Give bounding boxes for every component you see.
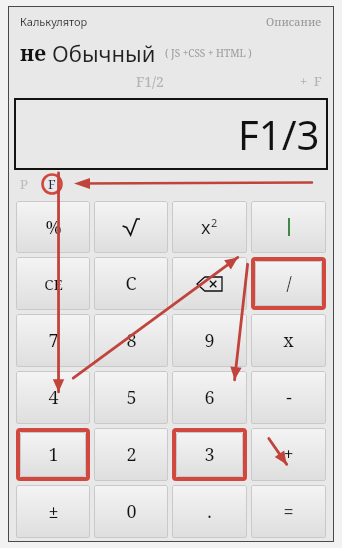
staticText: 6 bbox=[204, 385, 215, 410]
button[interactable]: 2 bbox=[94, 428, 168, 481]
staticText: . bbox=[207, 499, 212, 524]
staticText: 1 bbox=[48, 442, 59, 467]
button[interactable]: Описание bbox=[266, 14, 322, 29]
staticText: 7 bbox=[48, 328, 59, 353]
other: Backspace bbox=[172, 257, 247, 310]
staticText: x bbox=[201, 215, 211, 240]
staticText: 4 bbox=[48, 385, 59, 410]
staticText: 0 bbox=[126, 499, 137, 524]
button[interactable]: ± bbox=[16, 485, 90, 538]
button[interactable]: 0 bbox=[94, 485, 168, 538]
button[interactable]: 3 bbox=[176, 432, 243, 477]
staticText: C bbox=[125, 271, 137, 296]
button[interactable]: P bbox=[20, 175, 28, 193]
button[interactable]: + bbox=[251, 428, 326, 481]
staticText: не bbox=[20, 39, 46, 68]
button[interactable]: x bbox=[251, 314, 326, 367]
staticText: + F bbox=[300, 72, 322, 90]
staticText: 2 bbox=[126, 442, 137, 467]
button[interactable]: F bbox=[48, 175, 56, 193]
button[interactable]: 4 bbox=[16, 371, 90, 424]
button[interactable]: % bbox=[16, 201, 90, 253]
button[interactable] bbox=[94, 201, 168, 253]
staticText: 8 bbox=[126, 328, 137, 353]
staticText: 5 bbox=[126, 385, 137, 410]
staticText: + bbox=[283, 442, 294, 467]
staticText: - bbox=[286, 385, 292, 410]
staticText: 2 bbox=[211, 215, 218, 230]
button[interactable]: 1 bbox=[20, 432, 86, 477]
button[interactable]: / bbox=[255, 261, 322, 306]
button[interactable]: x bbox=[172, 201, 247, 253]
button[interactable]: 5 bbox=[94, 371, 168, 424]
staticText: Описание bbox=[266, 14, 322, 29]
staticText: Калькулятор bbox=[20, 14, 88, 29]
button[interactable]: 6 bbox=[172, 371, 247, 424]
staticText: ( JS +CSS + HTML ) bbox=[165, 46, 252, 60]
button[interactable]: C bbox=[94, 257, 168, 310]
button[interactable]: CE bbox=[16, 257, 90, 310]
button[interactable]: 8 bbox=[94, 314, 168, 367]
button[interactable]: . bbox=[172, 485, 247, 538]
staticText: 9 bbox=[204, 328, 215, 353]
button[interactable]: - bbox=[251, 371, 326, 424]
button[interactable]: 7 bbox=[16, 314, 90, 367]
staticText: Обычный bbox=[52, 38, 156, 68]
staticText: F1/3 bbox=[238, 107, 320, 161]
staticText: / bbox=[286, 271, 292, 296]
staticText: ± bbox=[48, 499, 59, 524]
button[interactable] bbox=[172, 257, 247, 310]
staticText: CE bbox=[44, 274, 63, 294]
button[interactable]: 9 bbox=[172, 314, 247, 367]
staticText: % bbox=[45, 215, 62, 240]
button[interactable] bbox=[251, 201, 326, 253]
button[interactable]: = bbox=[251, 485, 326, 538]
staticText: = bbox=[283, 499, 294, 524]
staticText: 3 bbox=[204, 442, 215, 467]
staticText: x bbox=[283, 328, 294, 353]
staticText: F1/2 bbox=[136, 72, 164, 91]
